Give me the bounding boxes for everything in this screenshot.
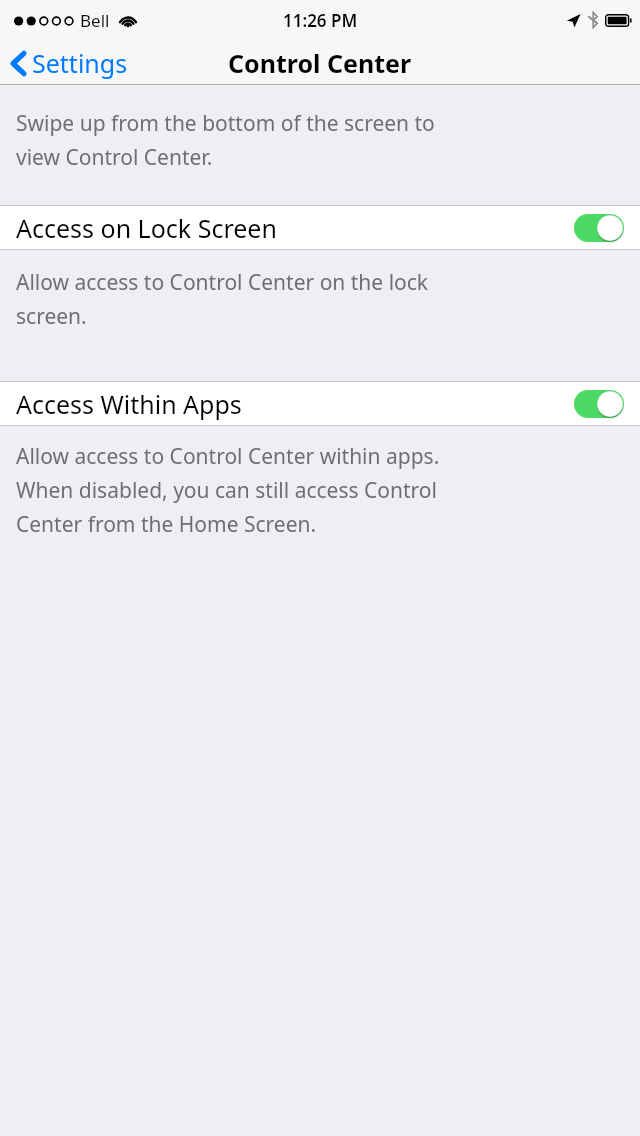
staticText: Swipe up from the bottom of the screen t… xyxy=(16,109,435,138)
button[interactable]: Access on Lock Screen xyxy=(0,206,640,249)
staticText: Allow access to Control Center on the lo… xyxy=(16,268,429,297)
button[interactable]: Toggle, on xyxy=(574,390,624,418)
staticText: Allow access to Control Center within ap… xyxy=(16,442,440,471)
staticText: Center from the Home Screen. xyxy=(16,510,317,539)
staticText: 11:26 PM xyxy=(283,9,358,32)
button[interactable]: Settings xyxy=(8,42,136,84)
button[interactable]: Access Within Apps xyxy=(0,382,640,425)
staticText: Settings xyxy=(32,46,128,80)
staticText: Access on Lock Screen xyxy=(16,211,277,245)
staticText: When disabled, you can still access Cont… xyxy=(16,476,437,505)
staticText: Bell xyxy=(80,9,110,32)
staticText: Access Within Apps xyxy=(16,387,242,421)
staticText: Control Center xyxy=(228,46,412,80)
button[interactable]: Toggle, on xyxy=(574,214,624,242)
staticText: screen. xyxy=(16,302,87,331)
staticText: view Control Center. xyxy=(16,143,213,172)
